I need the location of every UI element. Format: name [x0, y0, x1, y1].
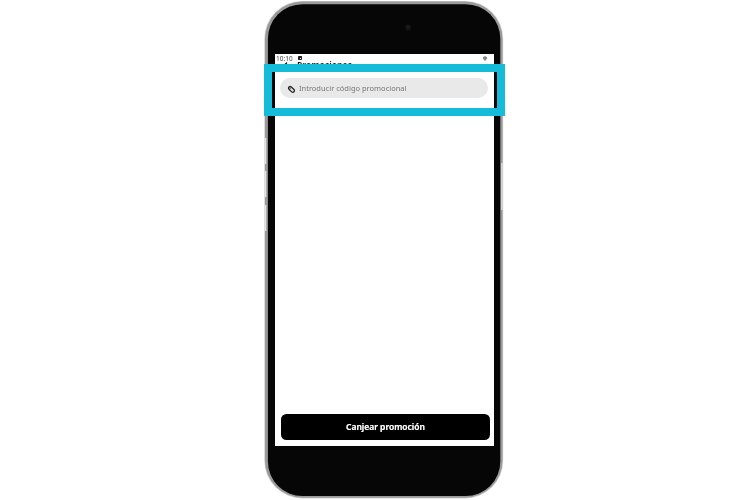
staticText: Promociones — [297, 59, 352, 71]
staticText: Introducir código promocional — [299, 83, 407, 93]
button[interactable]: Introducir código promocional — [280, 78, 488, 98]
button[interactable]: Back — [279, 59, 291, 71]
button[interactable]: Canjear promoción — [281, 414, 490, 440]
staticText: 10:10 — [276, 54, 293, 62]
staticText: Canjear promoción — [346, 421, 425, 433]
